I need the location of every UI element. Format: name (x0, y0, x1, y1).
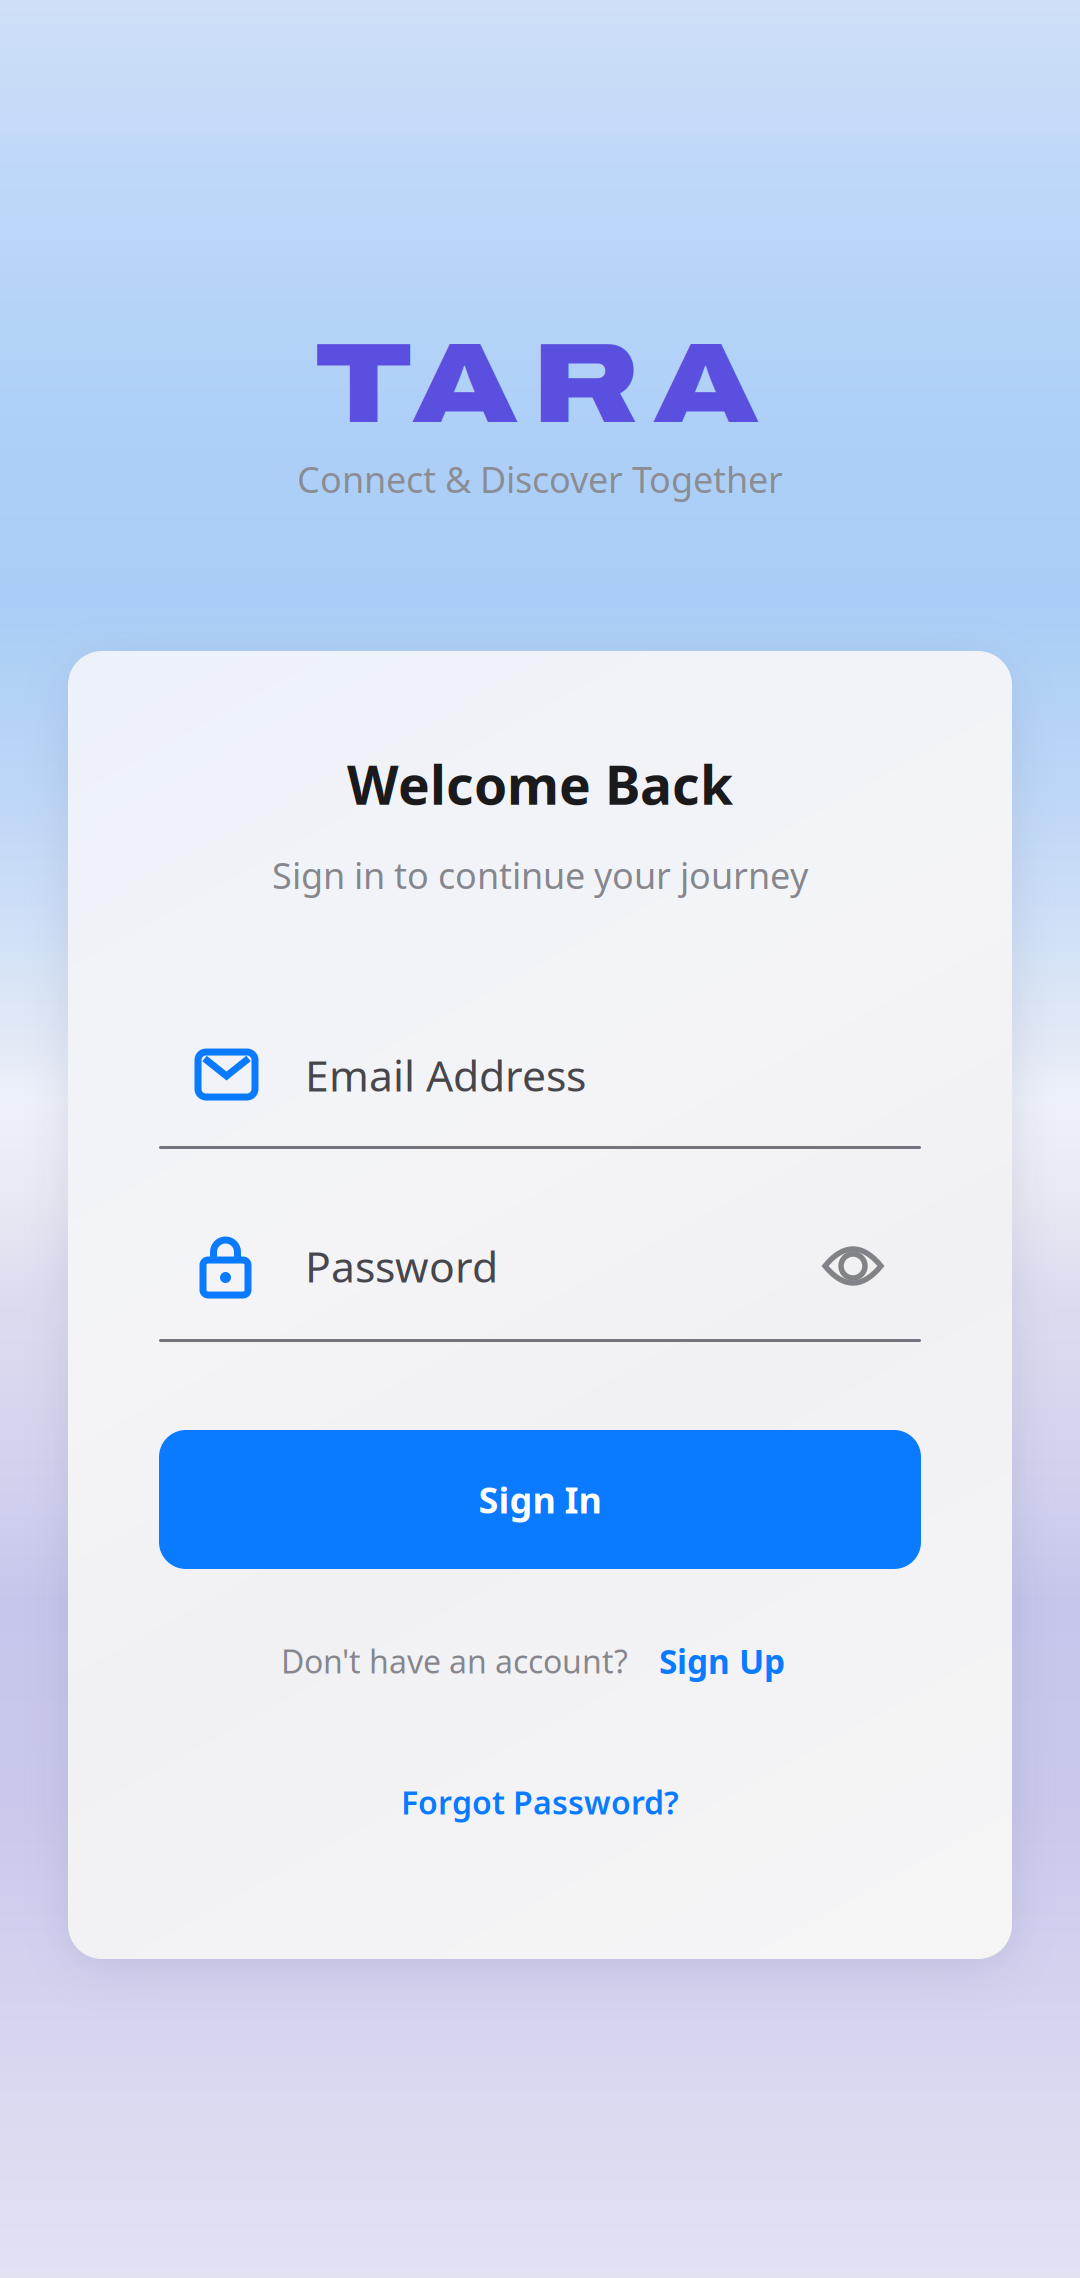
staticText: Sign Up (659, 1639, 785, 1683)
staticText: Don't have an account? (281, 1640, 628, 1682)
button[interactable]: Sign Up (659, 1639, 785, 1683)
button[interactable]: Forgot Password? (68, 1777, 1012, 1827)
staticText: TARA (314, 323, 759, 445)
staticText: Email Address (305, 1047, 586, 1103)
staticText: Welcome Back (347, 749, 733, 819)
staticText: Sign in to continue your journey (272, 851, 808, 899)
staticText: Sign In (478, 1476, 601, 1523)
staticText: Forgot Password? (401, 1781, 679, 1823)
staticText: Password (305, 1238, 498, 1294)
staticText: Connect & Discover Together (297, 455, 783, 503)
button[interactable]: Show password (822, 1244, 884, 1288)
button[interactable]: Sign In (159, 1430, 921, 1569)
